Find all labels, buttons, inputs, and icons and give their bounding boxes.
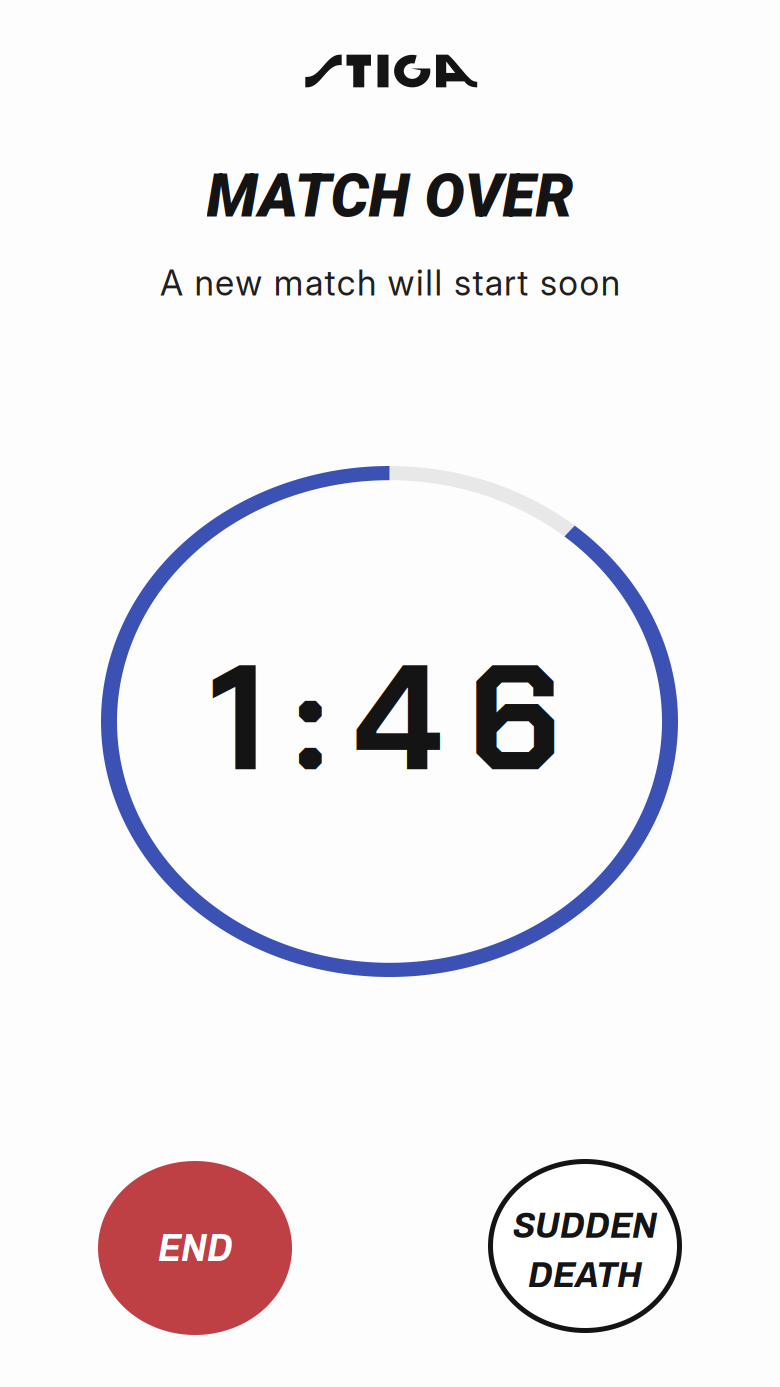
staticText: SUDDEN (513, 1205, 657, 1245)
button[interactable]: END (98, 1161, 292, 1335)
button[interactable]: SUDDEN (488, 1159, 682, 1333)
staticText: MATCH OVER (206, 161, 573, 231)
staticText: END (158, 1227, 232, 1269)
staticText: A new match will start soon (160, 262, 620, 304)
staticText: 1:46 (209, 621, 561, 815)
staticText: DEATH (528, 1254, 642, 1295)
